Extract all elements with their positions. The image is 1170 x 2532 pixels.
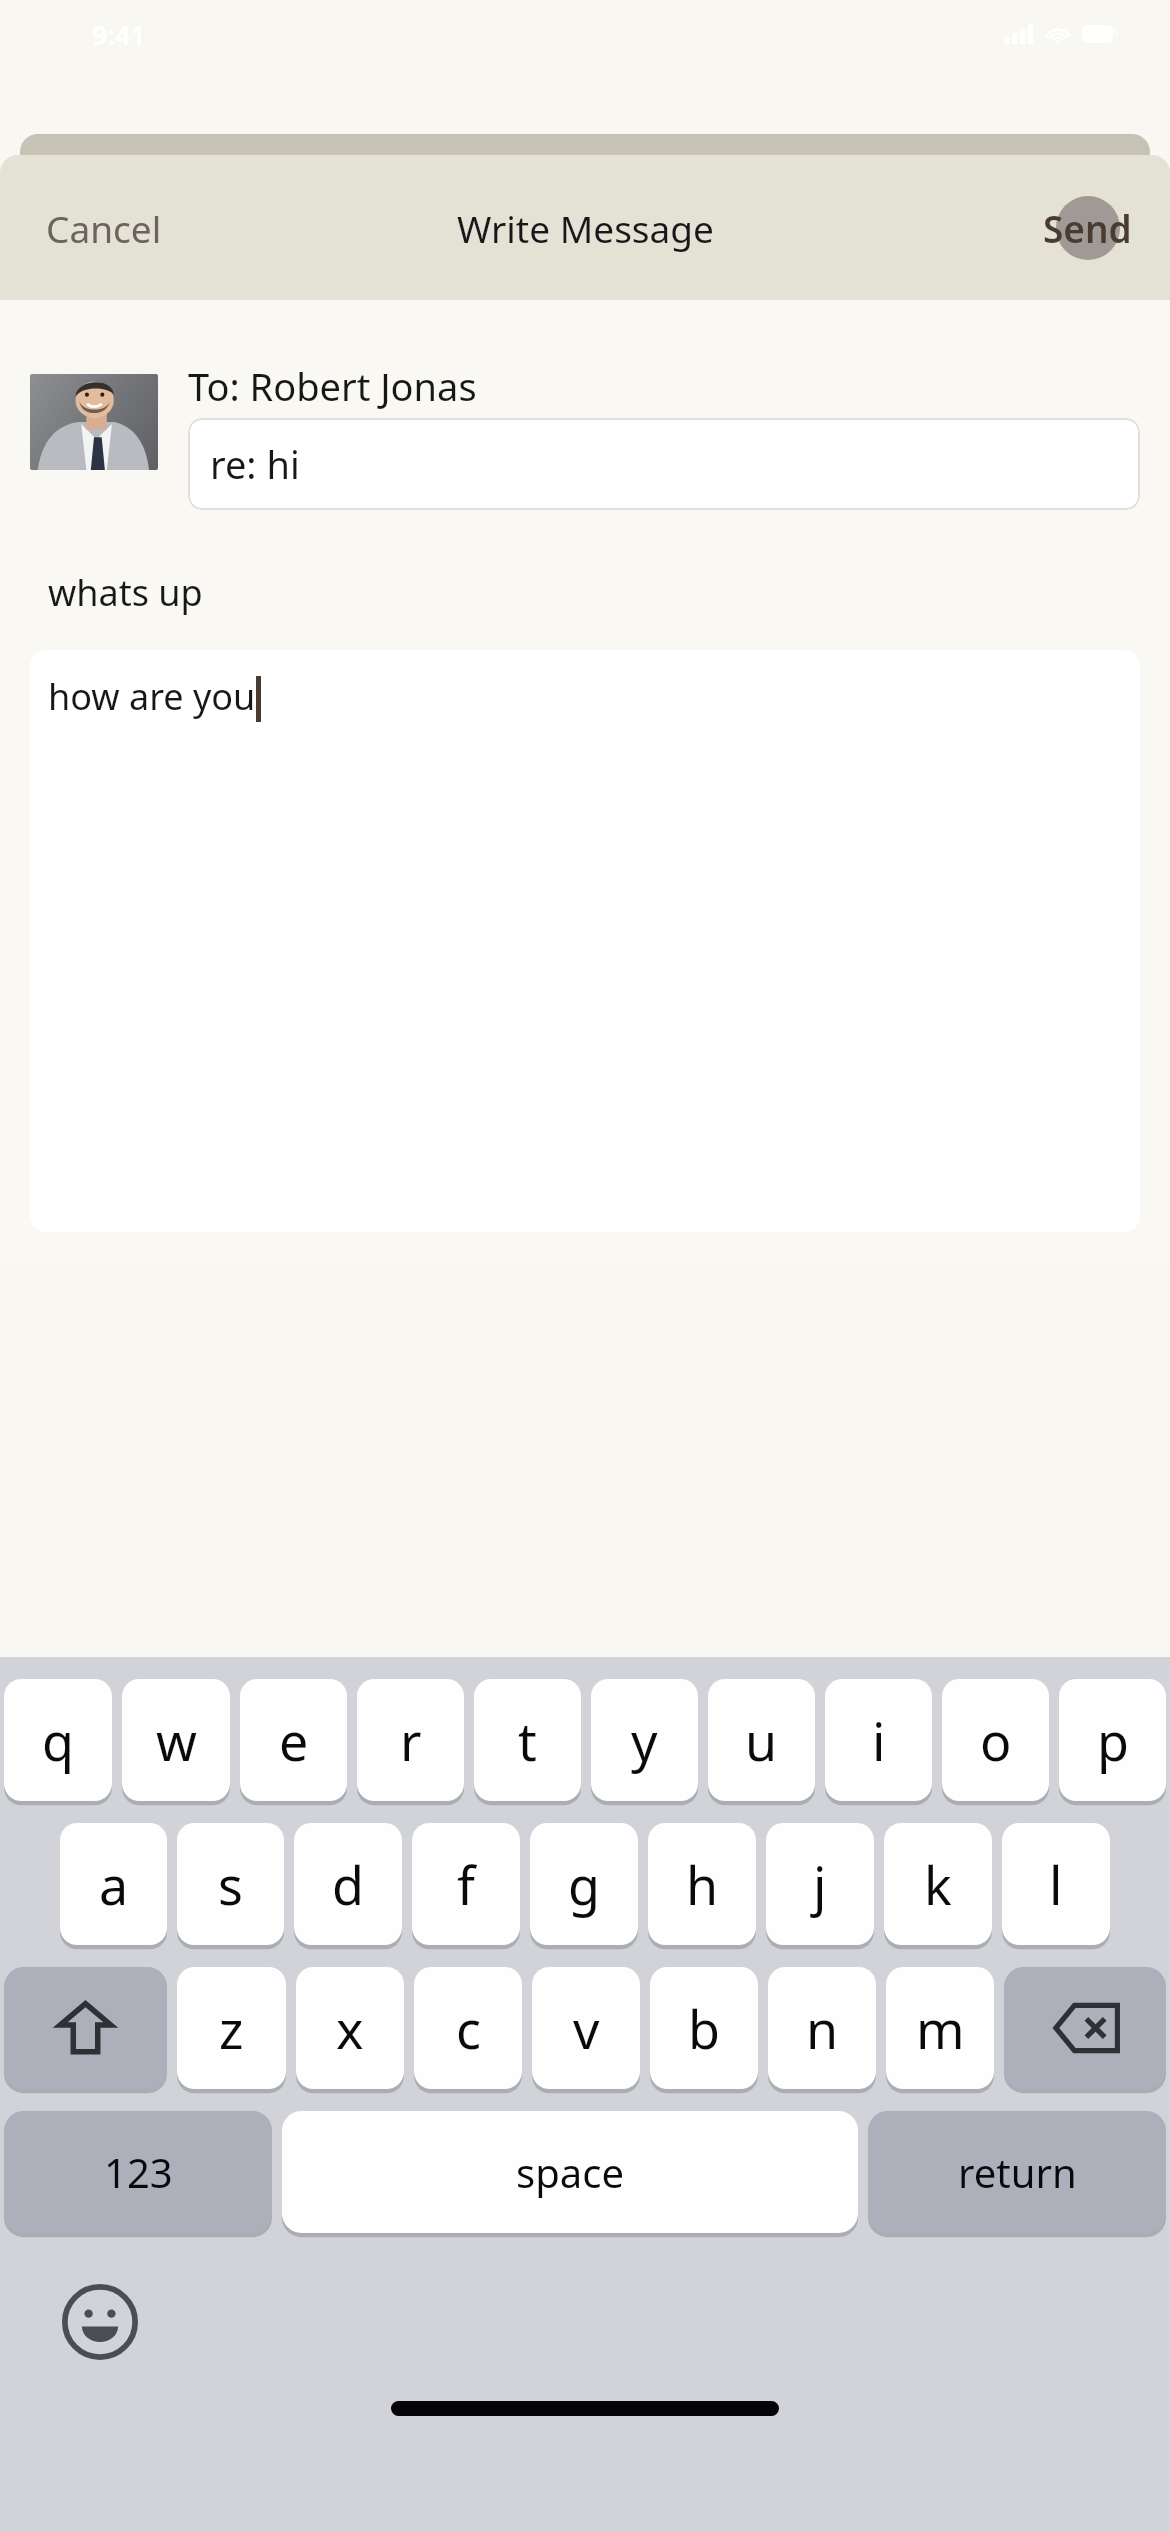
staticText: j (813, 1849, 827, 1920)
staticText: c (456, 1993, 481, 2064)
staticText: q (42, 1705, 74, 1776)
staticText: return (958, 2145, 1077, 2199)
button[interactable]: a (60, 1823, 167, 1945)
staticText: y (631, 1705, 658, 1776)
staticText: r (400, 1705, 422, 1776)
staticText: h (686, 1849, 719, 1920)
staticText: Send (1043, 203, 1132, 253)
button[interactable]: z (177, 1967, 286, 2089)
staticText: a (99, 1849, 129, 1920)
button[interactable]: d (294, 1823, 402, 1945)
staticText: 9:41 (92, 16, 146, 53)
button[interactable]: re: hi (188, 418, 1140, 510)
button[interactable]: k (884, 1823, 992, 1945)
button[interactable]: n (768, 1967, 876, 2089)
button[interactable]: h (648, 1823, 756, 1945)
button[interactable]: Emoji keyboard (52, 2274, 148, 2370)
staticText: b (688, 1993, 720, 2064)
button[interactable]: w (122, 1679, 230, 1801)
button[interactable]: o (942, 1679, 1049, 1801)
button[interactable]: r (357, 1679, 464, 1801)
staticText: space (516, 2145, 624, 2199)
button[interactable]: p (1059, 1679, 1166, 1801)
staticText: Cancel (46, 203, 162, 253)
staticText: v (573, 1993, 600, 2064)
staticText: o (980, 1705, 1012, 1776)
staticText: x (336, 1993, 364, 2064)
button[interactable]: f (412, 1823, 520, 1945)
staticText: i (872, 1705, 886, 1776)
button[interactable]: x (296, 1967, 404, 2089)
staticText: n (806, 1993, 839, 2064)
staticText: whats up (48, 568, 203, 617)
button[interactable]: v (532, 1967, 640, 2089)
staticText: m (916, 1993, 965, 2064)
staticText: s (218, 1849, 243, 1920)
button[interactable]: 123 (4, 2111, 272, 2233)
staticText: l (1049, 1849, 1063, 1920)
staticText: k (924, 1849, 952, 1920)
button[interactable]: Shift (4, 1967, 167, 2089)
button[interactable]: u (708, 1679, 815, 1801)
button[interactable]: g (530, 1823, 638, 1945)
button[interactable]: e (240, 1679, 347, 1801)
staticText: re: hi (210, 438, 300, 490)
button[interactable]: l (1002, 1823, 1110, 1945)
button[interactable]: return (868, 2111, 1166, 2233)
button[interactable]: y (591, 1679, 698, 1801)
button[interactable]: s (177, 1823, 284, 1945)
staticText: g (568, 1849, 600, 1920)
staticText: 123 (104, 2145, 173, 2199)
staticText: d (332, 1849, 364, 1920)
button[interactable]: c (414, 1967, 522, 2089)
button[interactable]: how are you (30, 650, 1140, 1232)
button[interactable]: m (886, 1967, 994, 2089)
staticText: To: Robert Jonas (188, 360, 477, 412)
button[interactable]: b (650, 1967, 758, 2089)
button[interactable]: Cancel (30, 191, 178, 265)
button[interactable]: space (282, 2111, 858, 2233)
staticText: u (745, 1705, 778, 1776)
staticText: z (219, 1993, 244, 2064)
staticText: w (156, 1705, 197, 1776)
staticText: p (1097, 1705, 1129, 1776)
button[interactable]: q (4, 1679, 112, 1801)
staticText: Write Message (457, 203, 714, 253)
button[interactable]: j (766, 1823, 874, 1945)
staticText: t (518, 1705, 537, 1776)
button[interactable]: Send (1029, 186, 1146, 270)
button[interactable]: Backspace (1004, 1967, 1166, 2089)
staticText: e (279, 1705, 309, 1776)
button[interactable]: t (474, 1679, 581, 1801)
staticText: f (457, 1849, 475, 1920)
button[interactable]: Contact photo (30, 374, 158, 470)
staticText: how are you (48, 672, 256, 721)
button[interactable]: i (825, 1679, 932, 1801)
